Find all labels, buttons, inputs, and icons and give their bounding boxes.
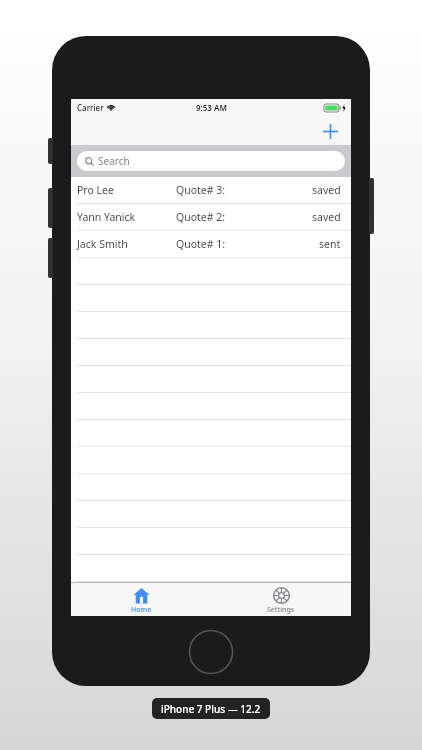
button[interactable]: Jack Smith [71, 231, 351, 257]
staticText: Quote# 2: [176, 210, 226, 224]
staticText: Quote# 1: [176, 237, 226, 251]
button[interactable]: Home [71, 583, 211, 616]
staticText: Yann Yanick [77, 210, 136, 224]
staticText: iPhone 7 Plus — 12.2 [161, 702, 261, 716]
staticText: saved [312, 210, 341, 224]
button[interactable]: Pro Lee [71, 177, 351, 203]
staticText: Carrier [77, 102, 104, 113]
staticText: Jack Smith [77, 237, 128, 251]
staticText: Home [131, 605, 152, 615]
button[interactable]: Settings [211, 583, 351, 616]
staticText: Quote# 3: [176, 183, 226, 197]
button[interactable]: Yann Yanick [71, 204, 351, 230]
staticText: Search [98, 154, 130, 168]
button[interactable]: Search [77, 151, 345, 171]
button[interactable]: Add quote [318, 119, 342, 143]
staticText: 9:53 AM [196, 102, 227, 113]
staticText: Settings [267, 605, 295, 615]
staticText: sent [319, 237, 341, 251]
staticText: Pro Lee [77, 183, 114, 197]
staticText: saved [312, 183, 341, 197]
